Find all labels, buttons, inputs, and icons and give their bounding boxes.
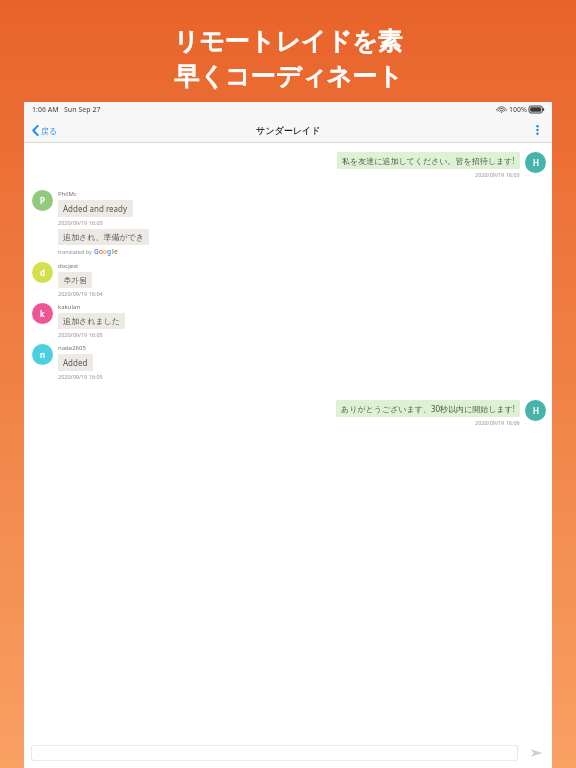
staticText: o <box>103 247 107 256</box>
staticText: k <box>40 308 45 319</box>
button[interactable]: d <box>32 262 552 297</box>
staticText: Added <box>63 357 88 368</box>
staticText: 追加されました <box>63 316 120 326</box>
staticText: l <box>112 247 114 256</box>
button[interactable] <box>31 745 518 761</box>
staticText: PhilMc <box>58 190 77 198</box>
button[interactable]: k <box>32 303 552 338</box>
staticText: 100% <box>509 105 527 115</box>
staticText: 1:06 AM <box>32 105 59 115</box>
button[interactable]: ありがとうございます、30秒以内に開始します! <box>24 400 546 426</box>
staticText: 2020/09/19 16:03 <box>58 219 103 226</box>
staticText: d <box>40 267 45 278</box>
staticText: n <box>40 349 46 360</box>
staticText: translated by <box>58 248 94 255</box>
staticText: リモートレイドを素 <box>173 26 403 57</box>
staticText: G <box>94 247 99 256</box>
staticText: 追加され、準備ができ <box>63 232 144 242</box>
staticText: サンダーレイド <box>256 125 321 136</box>
staticText: 2020/09/19 16:06 <box>475 419 520 426</box>
staticText: 2020/09/19 16:03 <box>475 171 520 178</box>
staticText: 추가됨 <box>63 275 87 285</box>
staticText: 戻る <box>41 126 58 136</box>
staticText: 2020/09/19 16:05 <box>58 373 103 380</box>
button[interactable]: More options <box>528 121 546 139</box>
button[interactable]: n <box>32 344 552 380</box>
staticText: 2020/09/19 16:05 <box>58 331 103 338</box>
staticText: 早くコーディネート <box>174 61 403 92</box>
staticText: H <box>533 157 539 168</box>
staticText: o <box>99 247 103 256</box>
staticText: Sun Sep 27 <box>64 105 101 115</box>
staticText: e <box>114 247 118 256</box>
staticText: g <box>107 247 112 256</box>
staticText: docjest <box>58 262 79 270</box>
staticText: 2020/09/19 16:04 <box>58 290 103 297</box>
button[interactable]: 戻る <box>30 122 60 139</box>
staticText: 私を友達に追加してください。皆を招待します! <box>342 155 515 166</box>
button[interactable]: 私を友達に追加してください。皆を招待します! <box>24 152 546 178</box>
staticText: ありがとうございます、30秒以内に開始します! <box>341 403 515 414</box>
staticText: H <box>533 405 539 416</box>
button[interactable]: Send <box>527 744 545 762</box>
staticText: Added and ready <box>63 203 128 214</box>
staticText: nade2605 <box>58 344 86 352</box>
button[interactable]: P <box>32 190 552 256</box>
staticText: kakulan <box>58 303 81 311</box>
staticText: P <box>40 195 45 206</box>
